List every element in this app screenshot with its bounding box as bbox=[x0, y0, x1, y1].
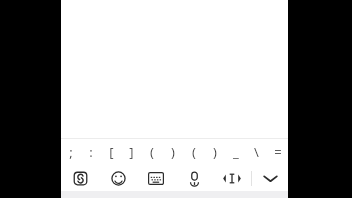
button[interactable]: _ bbox=[225, 139, 246, 165]
button[interactable]: ( bbox=[183, 139, 204, 165]
button[interactable]: ; bbox=[61, 139, 81, 165]
staticText: ; bbox=[69, 143, 73, 161]
button[interactable]: ) bbox=[204, 139, 225, 165]
staticText: ) bbox=[171, 143, 175, 161]
staticText: ( bbox=[150, 143, 154, 161]
button[interactable]: = bbox=[267, 139, 288, 165]
staticText: _ bbox=[233, 143, 239, 161]
button[interactable]: ( bbox=[141, 139, 162, 165]
staticText: [ bbox=[109, 143, 114, 161]
button[interactable]: Hide keyboard bbox=[252, 165, 288, 191]
staticText: = bbox=[274, 143, 282, 161]
staticText: ] bbox=[129, 143, 134, 161]
button[interactable]: Emoji bbox=[99, 165, 137, 191]
button[interactable]: Move cursor bbox=[213, 165, 251, 191]
button[interactable]: [ bbox=[101, 139, 121, 165]
button[interactable]: \ bbox=[246, 139, 267, 165]
button[interactable]: Voice input bbox=[175, 165, 213, 191]
staticText: ( bbox=[192, 143, 196, 161]
button[interactable]: ) bbox=[162, 139, 183, 165]
button[interactable]: Keyboard layout bbox=[137, 165, 175, 191]
button[interactable]: ] bbox=[121, 139, 141, 165]
staticText: \ bbox=[254, 143, 259, 161]
staticText: : bbox=[89, 143, 93, 161]
button[interactable]: Input method settings bbox=[61, 165, 99, 191]
staticText: ) bbox=[213, 143, 217, 161]
button[interactable]: : bbox=[81, 139, 101, 165]
